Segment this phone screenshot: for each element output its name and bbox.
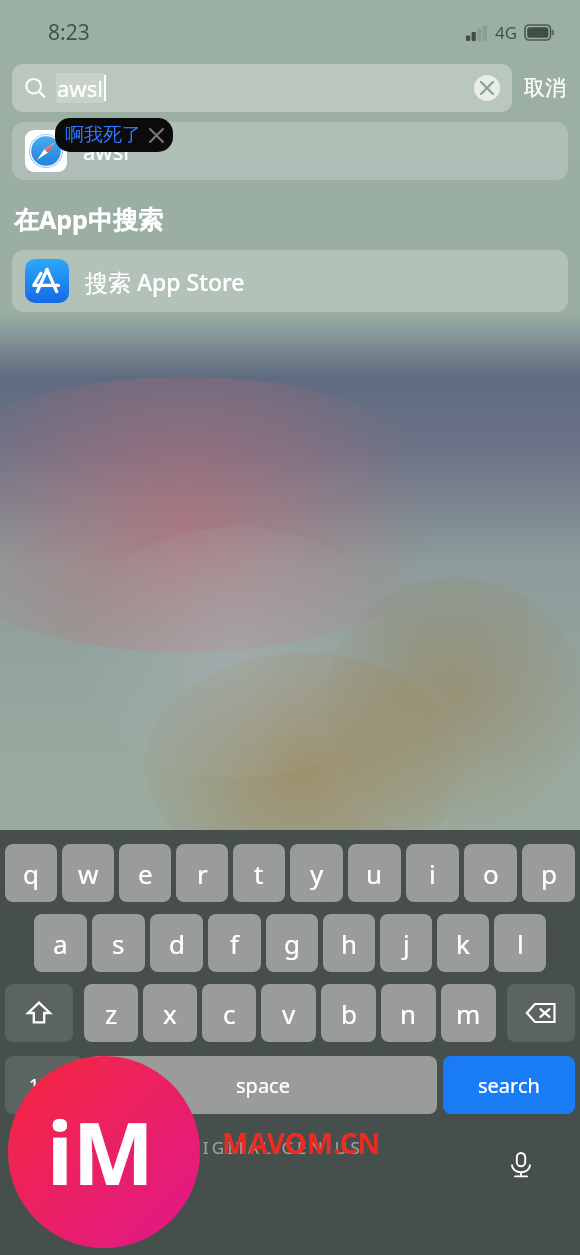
button[interactable]: space — [89, 1056, 437, 1114]
button[interactable]: c — [202, 984, 256, 1042]
button[interactable]: awsl — [12, 64, 512, 112]
button[interactable]: v — [261, 984, 316, 1042]
staticText: f — [230, 926, 239, 961]
staticText: awsl — [57, 73, 103, 103]
staticText: e — [138, 856, 153, 891]
staticText: 8:23 — [48, 18, 90, 47]
button[interactable]: 取消 — [522, 69, 568, 107]
staticText: u — [366, 856, 383, 891]
staticText: w — [78, 856, 99, 891]
button[interactable]: search — [443, 1056, 575, 1114]
staticText: q — [23, 856, 39, 891]
staticText: d — [169, 926, 185, 961]
staticText: space — [236, 1072, 290, 1099]
staticText: 搜索 App Store — [85, 266, 245, 297]
staticText: g — [284, 926, 300, 961]
button[interactable]: l — [494, 914, 546, 972]
staticText: t — [254, 856, 264, 891]
staticText: awsl — [83, 136, 129, 166]
button[interactable]: awsl — [12, 122, 568, 180]
button[interactable]: q — [5, 844, 57, 902]
staticText: h — [341, 926, 358, 961]
staticText: 123 — [29, 1073, 60, 1098]
staticText: z — [105, 996, 118, 1031]
button[interactable]: Dictation — [504, 1148, 538, 1182]
button[interactable]: i — [406, 844, 459, 902]
button[interactable]: o — [464, 844, 517, 902]
staticText: r — [197, 856, 208, 891]
button[interactable]: j — [380, 914, 432, 972]
button[interactable]: 啊我死了 — [55, 118, 173, 152]
button[interactable]: t — [233, 844, 285, 902]
staticText: MAVOM.CN — [222, 1124, 381, 1162]
button[interactable]: e — [119, 844, 171, 902]
button[interactable]: z — [84, 984, 138, 1042]
staticText: s — [112, 926, 125, 961]
button[interactable]: s — [92, 914, 145, 972]
button[interactable]: 搜索 App Store — [12, 250, 568, 312]
staticText: m — [456, 996, 481, 1031]
staticText: a — [53, 926, 68, 961]
staticText: b — [341, 996, 357, 1031]
staticText: DIGITAL GENIUS — [187, 1136, 363, 1159]
button[interactable]: n — [381, 984, 436, 1042]
button[interactable]: d — [150, 914, 203, 972]
button[interactable]: y — [290, 844, 343, 902]
staticText: c — [223, 996, 236, 1031]
button[interactable]: Shift — [5, 984, 73, 1042]
staticText: 4G — [495, 21, 518, 44]
staticText: k — [456, 926, 470, 961]
button[interactable]: f — [208, 914, 261, 972]
staticText: i — [429, 856, 436, 891]
button[interactable]: u — [348, 844, 401, 902]
staticText: y — [310, 856, 324, 891]
staticText: 取消 — [524, 75, 566, 101]
button[interactable]: p — [522, 844, 575, 902]
staticText: n — [400, 996, 417, 1031]
button[interactable]: g — [266, 914, 318, 972]
staticText: j — [403, 926, 410, 961]
staticText: 在App中搜索 — [14, 202, 163, 236]
button[interactable]: m — [441, 984, 496, 1042]
staticText: iM — [47, 1093, 154, 1210]
button[interactable]: k — [437, 914, 489, 972]
button[interactable]: Clear text — [474, 75, 500, 101]
staticText: l — [517, 926, 524, 961]
staticText: p — [541, 856, 557, 891]
staticText: o — [483, 856, 499, 891]
button[interactable]: h — [323, 914, 375, 972]
staticText: search — [478, 1072, 540, 1099]
staticText: x — [163, 996, 177, 1031]
button[interactable]: 123 — [5, 1056, 83, 1114]
button[interactable]: w — [62, 844, 114, 902]
button[interactable]: b — [321, 984, 376, 1042]
button[interactable]: r — [176, 844, 228, 902]
staticText: v — [282, 996, 296, 1031]
button[interactable]: x — [143, 984, 197, 1042]
button[interactable]: a — [34, 914, 87, 972]
staticText: 啊我死了 — [65, 123, 141, 147]
button[interactable]: Backspace — [507, 984, 575, 1042]
